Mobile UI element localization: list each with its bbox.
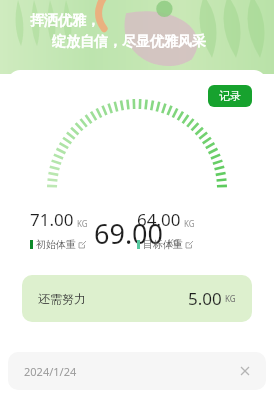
staticText: KG [184, 218, 195, 229]
staticText: 记录 [219, 89, 241, 103]
staticText: KG [225, 293, 236, 304]
staticText: 目标体重 [143, 238, 183, 251]
staticText: 69.00 [94, 215, 164, 252]
staticText: 2024/1/24 [24, 364, 77, 379]
button[interactable]: 64.00 [137, 208, 244, 251]
staticText: 5.00 [188, 287, 222, 310]
button[interactable]: 2024/1/24 [8, 352, 266, 390]
staticText: 64.00 [137, 208, 181, 231]
staticText: KG [77, 218, 88, 229]
staticText: 71.00 [30, 208, 74, 231]
staticText: 还需努力 [38, 291, 86, 306]
button[interactable]: 还需努力 [22, 275, 252, 322]
staticText: 绽放自信，尽显优雅风采 [52, 33, 206, 51]
button[interactable]: 71.00 [30, 208, 137, 251]
staticText: 挥洒优雅， [30, 12, 100, 30]
button[interactable]: Close [236, 362, 254, 380]
staticText: 初始体重 [36, 238, 76, 251]
button[interactable]: 记录 [208, 85, 252, 107]
staticText: KG [168, 236, 180, 248]
